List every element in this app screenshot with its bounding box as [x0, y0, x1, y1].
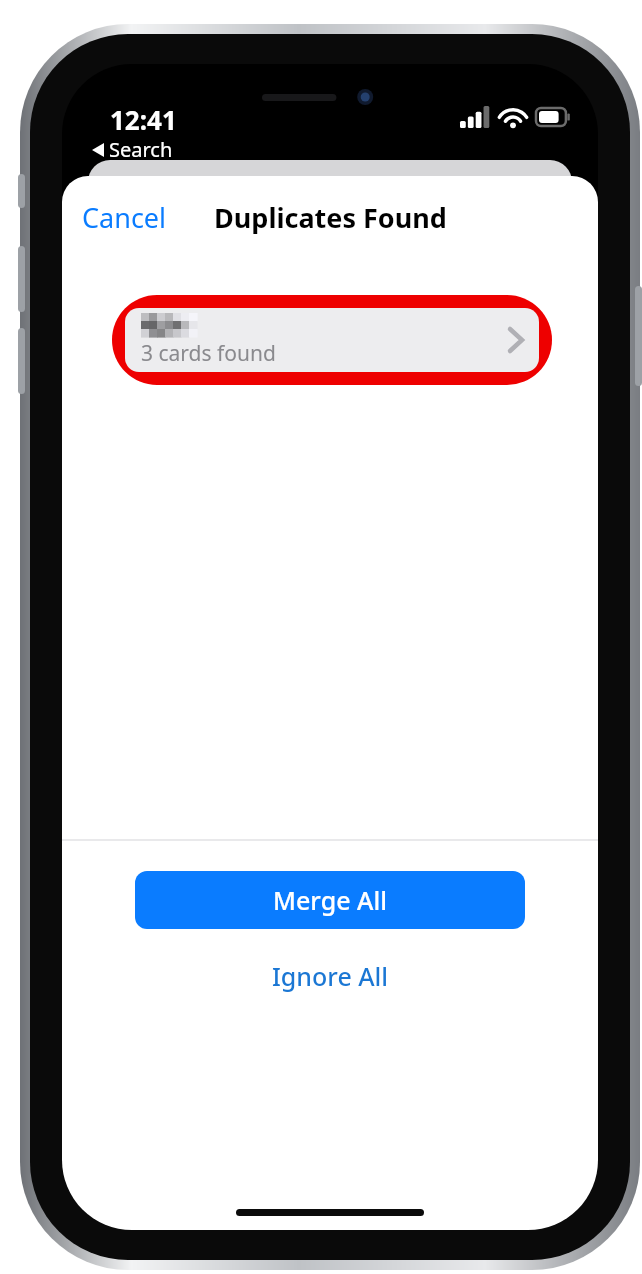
- staticText: Duplicates Found: [214, 199, 447, 236]
- button[interactable]: Cancel: [70, 191, 179, 244]
- staticText: 3 cards found: [141, 339, 276, 368]
- staticText: Merge All: [273, 883, 387, 917]
- button[interactable]: Search: [92, 136, 173, 163]
- staticText: Search: [109, 136, 173, 163]
- button[interactable]: 3 cards found: [125, 308, 539, 372]
- other: Show duplicate cards: [509, 328, 523, 352]
- staticText: Ignore All: [272, 959, 389, 993]
- button[interactable]: Merge All: [135, 871, 525, 929]
- staticText: Cancel: [82, 199, 167, 236]
- staticText: 12:41: [110, 102, 177, 137]
- button[interactable]: Ignore All: [244, 947, 417, 1005]
